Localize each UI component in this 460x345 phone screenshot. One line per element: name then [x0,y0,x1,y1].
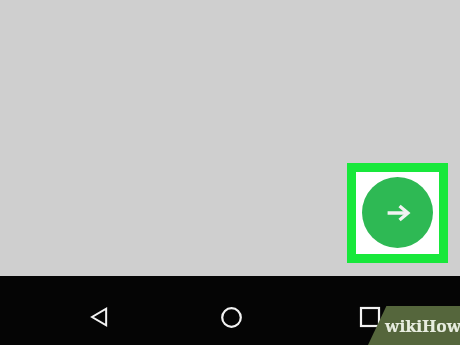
button[interactable]: Recent apps [342,289,398,345]
button[interactable]: Next [347,163,448,263]
button[interactable]: Home [203,289,259,345]
staticText: wikiHow [385,314,460,337]
button[interactable]: Back [72,289,128,345]
